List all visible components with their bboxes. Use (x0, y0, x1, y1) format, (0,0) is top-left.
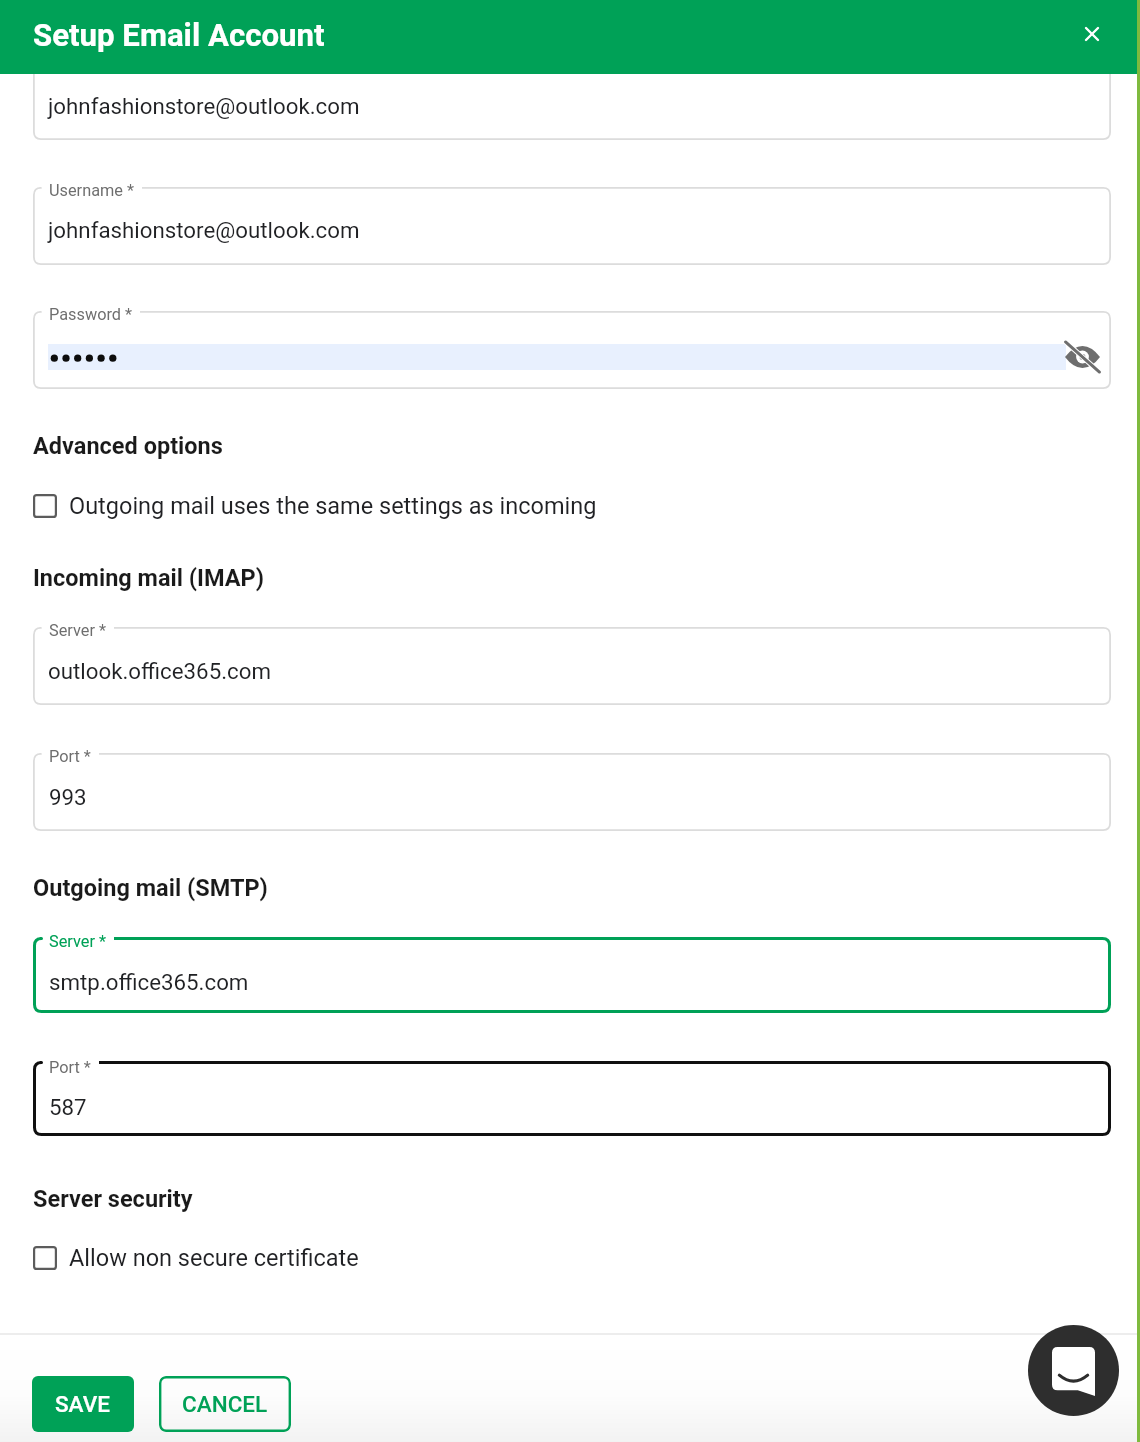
staticText: Allow non secure certificate (69, 1244, 359, 1272)
button[interactable] (33, 74, 1111, 140)
staticText: Password * (49, 305, 133, 324)
staticText: Incoming mail (IMAP) (33, 564, 265, 592)
staticText: Port * (49, 747, 91, 766)
staticText: outlook.office365.com (48, 658, 271, 684)
button[interactable]: Show password (1065, 341, 1100, 373)
staticText: Outgoing mail uses the same settings as … (69, 492, 597, 520)
staticText: Server * (49, 621, 106, 640)
staticText: Port * (49, 1058, 91, 1077)
button[interactable] (33, 187, 1111, 265)
staticText: smtp.office365.com (49, 969, 249, 995)
staticText: Advanced options (33, 432, 223, 460)
button[interactable] (33, 937, 1111, 1013)
button[interactable] (33, 753, 1111, 831)
staticText: johnfashionstore@outlook.com (48, 93, 360, 119)
button[interactable] (33, 1061, 1111, 1136)
button[interactable]: CANCEL (159, 1376, 291, 1432)
button[interactable] (33, 494, 1111, 518)
staticText: Server * (49, 932, 106, 951)
button[interactable] (33, 627, 1111, 705)
button[interactable] (33, 311, 1111, 389)
staticText: Outgoing mail (SMTP) (33, 874, 268, 902)
staticText: johnfashionstore@outlook.com (48, 217, 360, 243)
staticText: CANCEL (182, 1391, 268, 1417)
staticText: 993 (49, 784, 87, 810)
button[interactable]: Open chat (1028, 1325, 1119, 1416)
staticText: SAVE (55, 1391, 111, 1417)
button[interactable]: Close (1068, 10, 1116, 58)
staticText: Setup Email Account (33, 17, 325, 54)
staticText: Server security (33, 1185, 193, 1213)
button[interactable] (33, 1246, 1111, 1270)
staticText: Username * (49, 181, 135, 200)
button[interactable]: SAVE (32, 1376, 134, 1432)
staticText: 587 (49, 1094, 87, 1120)
